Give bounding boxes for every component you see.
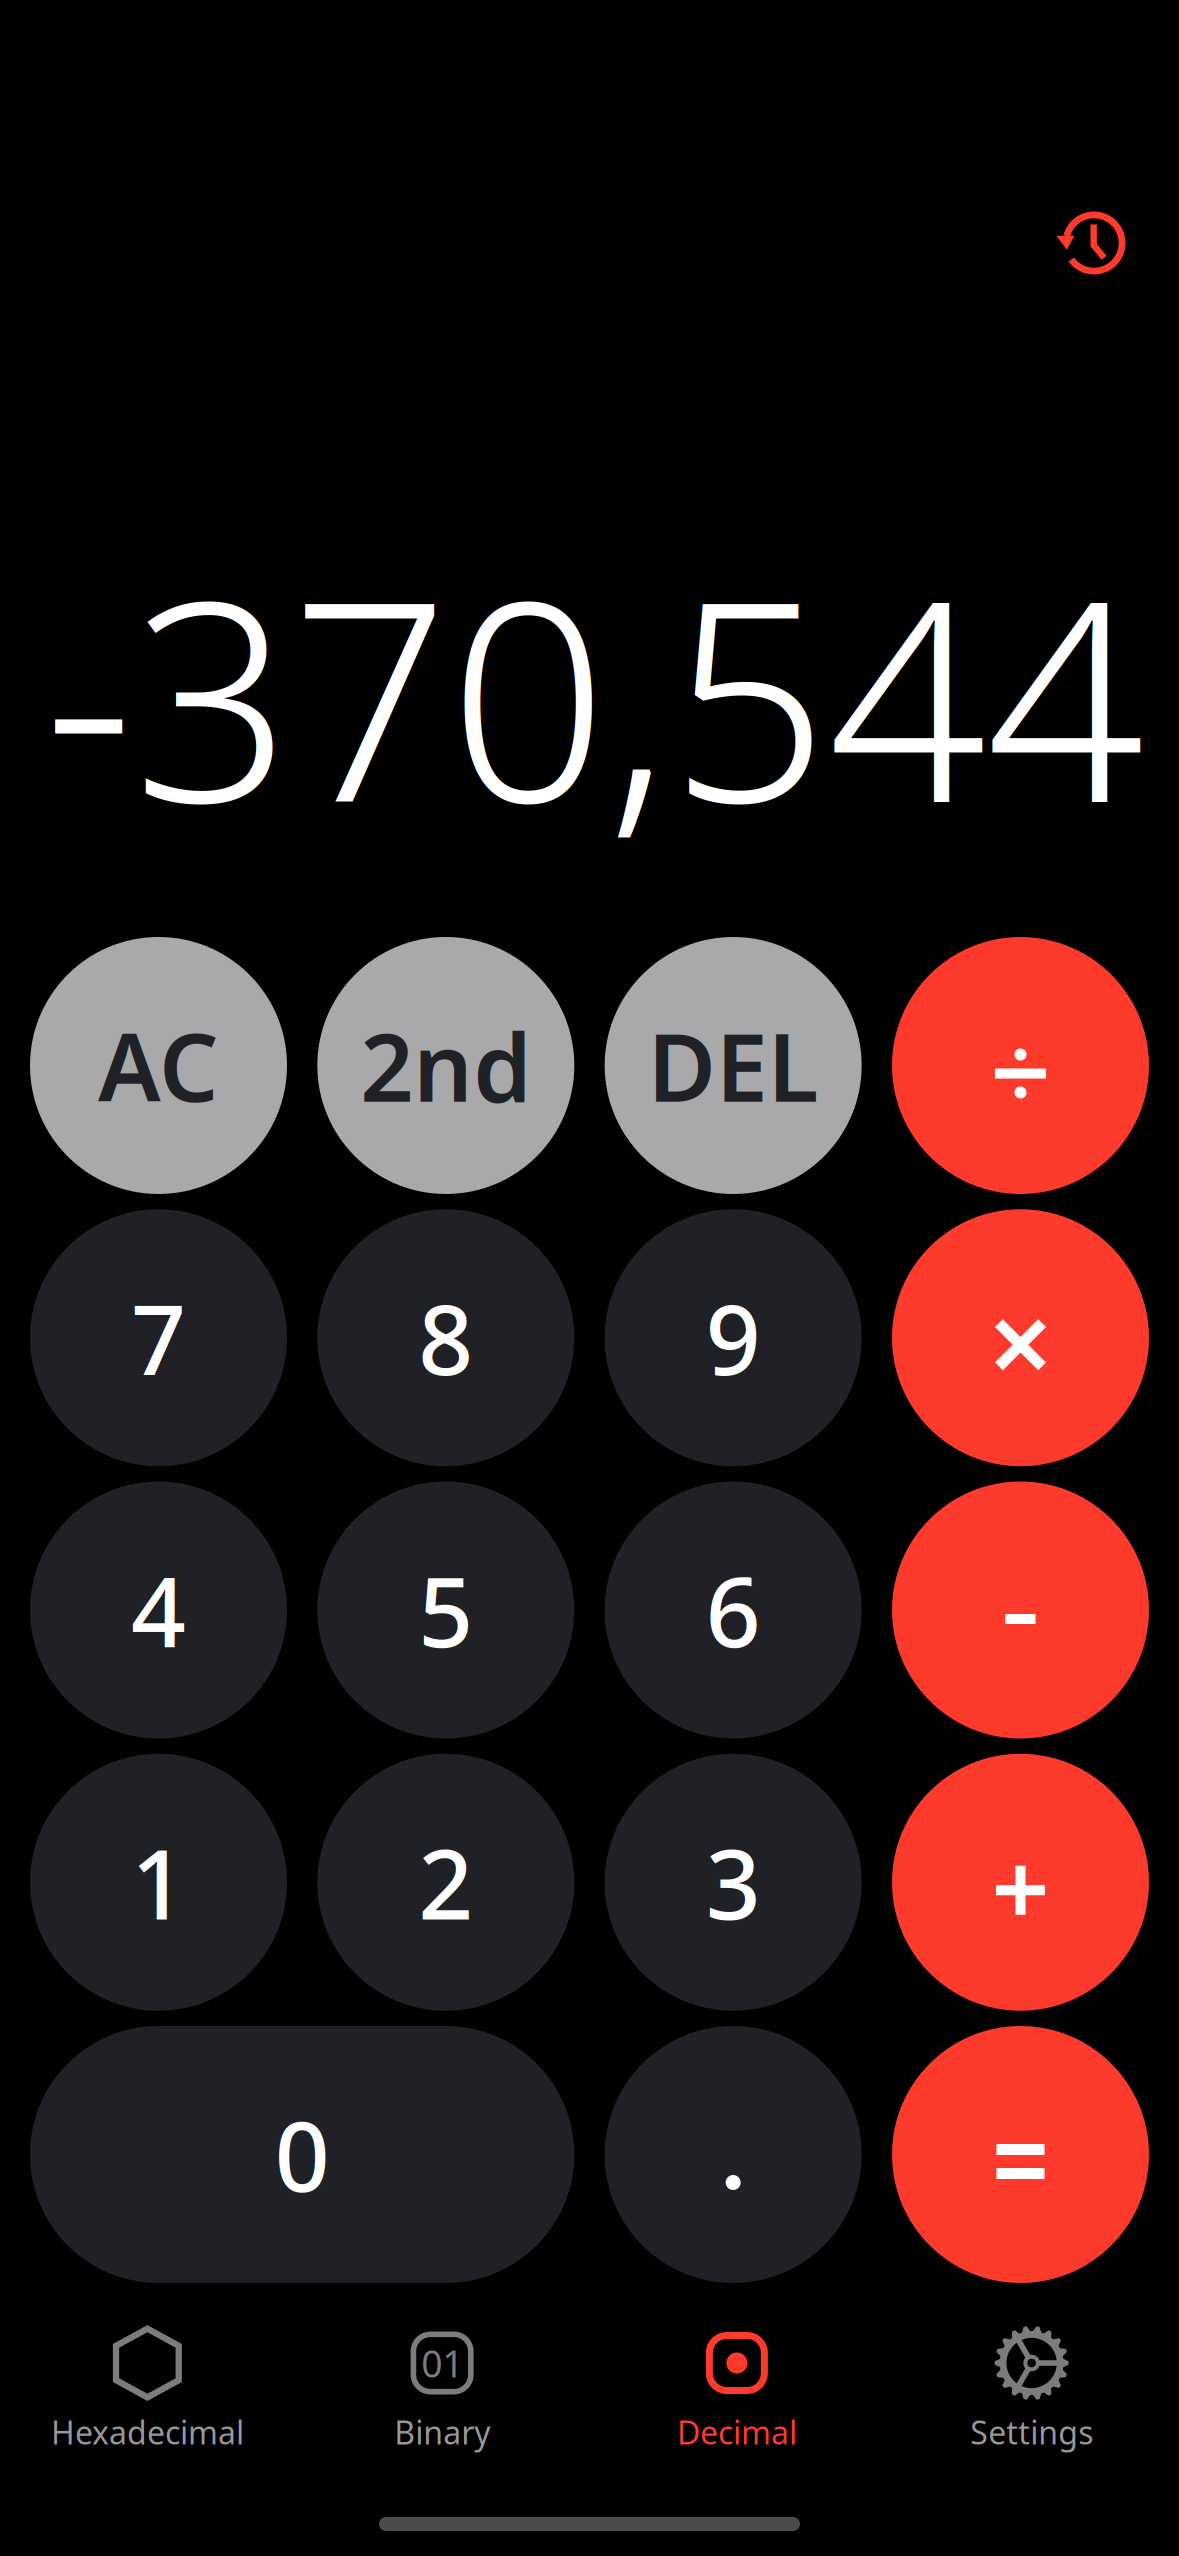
staticText: 0 xyxy=(275,2091,330,2218)
button[interactable]: 6 xyxy=(605,1481,862,1738)
staticText: 01 xyxy=(421,2338,463,2388)
staticText: 1 xyxy=(131,1818,186,1946)
staticText: 2nd xyxy=(360,1003,531,1127)
button[interactable]: DEL xyxy=(605,937,862,1194)
button[interactable]: Multiply xyxy=(892,1209,1149,1466)
staticText: 6 xyxy=(706,1546,761,1674)
button[interactable]: 2 xyxy=(317,1754,574,2011)
staticText: Binary xyxy=(394,2411,490,2453)
button[interactable]: Equals xyxy=(892,2026,1149,2283)
button[interactable]: 01 xyxy=(295,2322,590,2462)
button[interactable]: 4 xyxy=(30,1481,287,1738)
button[interactable]: 8 xyxy=(317,1209,574,1466)
button[interactable]: 9 xyxy=(605,1209,862,1466)
staticText: 7 xyxy=(131,1274,186,1401)
button[interactable]: Divide xyxy=(892,937,1149,1194)
button[interactable]: Hexadecimal xyxy=(0,2322,295,2462)
staticText: 2 xyxy=(418,1818,473,1946)
button[interactable]: 0 xyxy=(30,2026,574,2283)
button[interactable]: Decimal point xyxy=(605,2026,862,2283)
button[interactable]: History xyxy=(1034,183,1154,303)
button[interactable]: Subtract xyxy=(892,1481,1149,1738)
staticText: Settings xyxy=(970,2411,1093,2453)
staticText: AC xyxy=(98,1003,219,1127)
button[interactable]: Settings xyxy=(884,2322,1179,2462)
staticText: DEL xyxy=(648,1003,819,1127)
staticText: 8 xyxy=(418,1274,473,1401)
button[interactable]: 5 xyxy=(317,1481,574,1738)
button[interactable]: 7 xyxy=(30,1209,287,1466)
button[interactable]: AC xyxy=(30,937,287,1194)
button[interactable]: 3 xyxy=(605,1754,862,2011)
staticText: Decimal xyxy=(677,2411,797,2453)
button[interactable]: Decimal xyxy=(589,2322,884,2462)
button[interactable]: 1 xyxy=(30,1754,287,2011)
staticText: -370,544 xyxy=(44,510,1144,878)
staticText: Hexadecimal xyxy=(51,2411,244,2453)
button[interactable]: Add xyxy=(892,1754,1149,2011)
button[interactable]: 2nd xyxy=(317,937,574,1194)
staticText: 3 xyxy=(706,1818,761,1946)
staticText: 9 xyxy=(706,1274,761,1401)
staticText: 4 xyxy=(131,1546,186,1674)
staticText: 5 xyxy=(418,1546,473,1674)
